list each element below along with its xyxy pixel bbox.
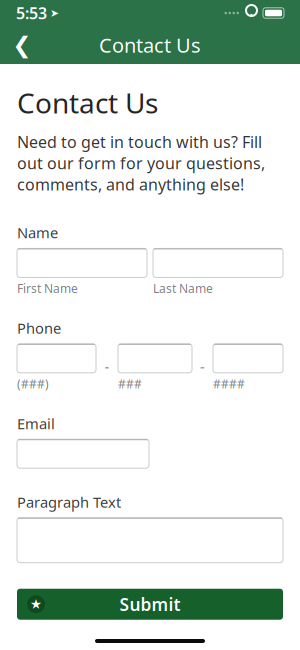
button[interactable]: Back: [0, 26, 44, 64]
staticText: 5:53: [16, 2, 47, 24]
staticText: Contact Us: [17, 84, 158, 121]
staticText: Need to get in touch with us? Fill out o…: [17, 131, 265, 195]
button[interactable]: Submit: [17, 589, 283, 620]
staticText: Submit: [119, 593, 180, 616]
staticText: ★: [30, 597, 42, 612]
staticText: -: [200, 357, 205, 376]
staticText: ❮: [12, 32, 31, 58]
staticText: -: [104, 357, 109, 376]
staticText: Paragraph Text: [17, 492, 121, 512]
staticText: Last Name: [153, 280, 213, 296]
staticText: First Name: [17, 280, 78, 296]
staticText: Email: [17, 414, 55, 433]
staticText: Phone: [17, 318, 61, 338]
staticText: Name: [17, 223, 58, 242]
staticText: ➤: [47, 7, 59, 19]
staticText: Contact Us: [99, 32, 201, 58]
staticText: (###): [17, 376, 49, 392]
staticText: ###: [118, 376, 142, 392]
staticText: ####: [213, 376, 245, 392]
